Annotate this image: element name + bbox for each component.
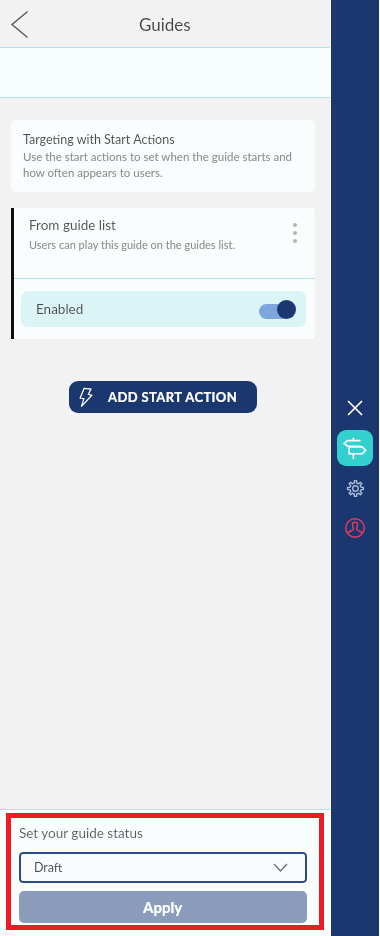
staticText: Enabled: [36, 301, 84, 317]
button[interactable]: Apply: [19, 891, 307, 923]
button[interactable]: More options: [286, 220, 304, 246]
button[interactable]: Guides: [337, 430, 373, 466]
button[interactable]: Back: [2, 7, 36, 41]
staticText: Targeting with Start Actions: [23, 132, 175, 147]
staticText: ADD START ACTION: [108, 389, 238, 405]
button[interactable]: Close: [339, 392, 371, 424]
button[interactable]: Settings: [339, 472, 371, 504]
staticText: Guides: [139, 14, 191, 34]
button[interactable]: Draft: [19, 852, 307, 883]
staticText: Users can play this guide on the guides …: [29, 238, 235, 251]
staticText: From guide list: [29, 217, 116, 233]
button[interactable]: Toggle enabled: [259, 298, 297, 320]
staticText: Set your guide status: [19, 825, 143, 841]
button[interactable]: From guide list: [14, 208, 315, 278]
button[interactable]: Enabled: [21, 291, 306, 327]
button[interactable]: Targeting with Start Actions: [11, 120, 315, 192]
staticText: Use the start actions to set when the gu…: [23, 150, 305, 180]
staticText: Draft: [34, 860, 63, 875]
button[interactable]: ADD START ACTION: [69, 381, 257, 413]
staticText: Apply: [143, 898, 183, 916]
button[interactable]: Account: [339, 512, 371, 544]
